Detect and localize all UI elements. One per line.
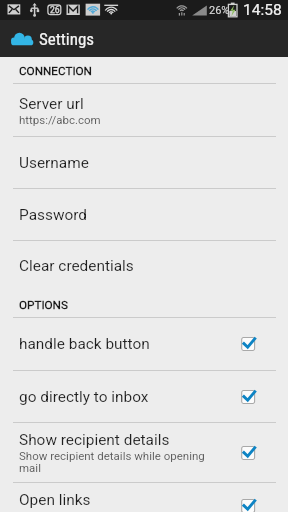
staticText: handle back button [19, 335, 150, 353]
button[interactable]: Clear credentials [0, 241, 288, 291]
button[interactable]: Show recipient details [0, 423, 288, 482]
staticText: go directly to inbox [19, 388, 149, 406]
staticText: OPTIONS [19, 298, 68, 312]
button[interactable]: Open links [0, 483, 288, 512]
staticText: https://abc.com [19, 113, 101, 126]
button[interactable]: Username [0, 137, 288, 188]
button[interactable]: Server url [0, 84, 288, 136]
staticText: Show recipient details while opening mai… [19, 449, 208, 475]
staticText: Open links [19, 491, 91, 509]
button[interactable]: Toggle setting [240, 384, 270, 410]
button[interactable]: Password [0, 189, 288, 240]
staticText: Password [19, 206, 87, 224]
button[interactable]: handle back button [0, 318, 288, 370]
staticText: 26 [50, 5, 60, 15]
staticText: Username [19, 154, 89, 172]
button[interactable]: Toggle setting [240, 440, 270, 466]
staticText: Settings [39, 29, 95, 49]
staticText: Server url [19, 95, 84, 113]
staticText: Show recipient details [19, 431, 170, 449]
staticText: Clear credentials [19, 257, 134, 275]
staticText: 14:58 [243, 1, 282, 19]
button[interactable]: Toggle setting [240, 493, 270, 512]
button[interactable]: Toggle setting [240, 331, 270, 357]
button[interactable]: go directly to inbox [0, 371, 288, 422]
staticText: 26% [209, 4, 230, 17]
staticText: CONNECTION [19, 64, 92, 78]
